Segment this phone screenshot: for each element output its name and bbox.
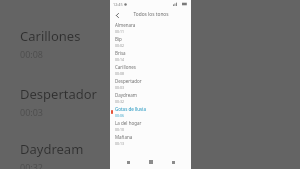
staticText: Carillones xyxy=(115,64,136,70)
button[interactable]: Carillones xyxy=(20,27,81,60)
staticText: Almenara xyxy=(115,22,136,28)
button[interactable]: Bip xyxy=(110,35,191,49)
button[interactable]: Back xyxy=(123,157,133,167)
button[interactable]: Home xyxy=(146,157,156,167)
button[interactable]: Daydream xyxy=(110,91,191,105)
staticText: 00:13 xyxy=(115,141,124,146)
button[interactable]: Recent apps xyxy=(168,157,178,167)
button[interactable]: Gotas de lluvia xyxy=(110,105,191,119)
staticText: 00:06 xyxy=(115,113,124,118)
staticText: Daydream xyxy=(115,92,137,98)
staticText: 00:08 xyxy=(115,71,124,76)
button[interactable]: Despertador xyxy=(110,77,191,91)
staticText: Despertador xyxy=(115,78,142,84)
staticText: 00:03 xyxy=(20,106,44,118)
button[interactable]: Daydream xyxy=(20,140,84,169)
staticText: 00:03 xyxy=(115,85,124,90)
staticText: La del hogar xyxy=(115,120,142,126)
staticText: 12:45 xyxy=(113,2,123,7)
staticText: 00:10 xyxy=(115,127,124,132)
staticText: 00:32 xyxy=(115,99,124,104)
button[interactable]: Back xyxy=(112,10,122,20)
staticText: Brisa xyxy=(115,50,126,56)
staticText: Bip xyxy=(115,36,122,42)
staticText: Despertador xyxy=(20,85,97,103)
staticText: Carillones xyxy=(20,27,81,45)
staticText: 00:08 xyxy=(20,48,44,60)
staticText: 00:32 xyxy=(20,161,44,169)
button[interactable]: La del hogar xyxy=(110,119,191,133)
staticText: Todos los tonos xyxy=(133,11,169,18)
staticText: Daydream xyxy=(20,140,84,158)
staticText: 00:02 xyxy=(115,43,124,48)
staticText: Mañana xyxy=(115,134,133,140)
button[interactable]: Almenara xyxy=(110,21,191,35)
staticText: 00:14 xyxy=(115,57,124,62)
staticText: Gotas de lluvia xyxy=(115,106,147,112)
button[interactable]: Despertador xyxy=(20,85,97,118)
button[interactable]: Carillones xyxy=(110,63,191,77)
staticText: 00:11 xyxy=(115,29,124,34)
button[interactable]: Mañana xyxy=(110,133,191,147)
button[interactable]: Brisa xyxy=(110,49,191,63)
